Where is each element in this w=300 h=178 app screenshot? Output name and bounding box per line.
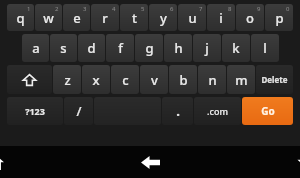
staticText: h bbox=[174, 39, 183, 57]
button[interactable]: x bbox=[82, 65, 110, 94]
button[interactable]: ?123 bbox=[7, 97, 63, 125]
staticText: s bbox=[60, 39, 67, 57]
staticText: 7 bbox=[199, 5, 203, 13]
staticText: 9 bbox=[257, 5, 261, 13]
staticText: q bbox=[16, 9, 25, 27]
staticText: w bbox=[43, 9, 54, 27]
button[interactable]: p bbox=[265, 4, 293, 31]
staticText: i bbox=[219, 9, 223, 27]
button[interactable]: z bbox=[53, 65, 81, 94]
staticText: v bbox=[151, 71, 158, 89]
staticText: g bbox=[145, 39, 154, 57]
button[interactable]: .com bbox=[194, 97, 241, 125]
staticText: c bbox=[122, 71, 129, 89]
button[interactable]: f bbox=[106, 34, 134, 62]
staticText: f bbox=[118, 39, 123, 57]
staticText: Go bbox=[261, 104, 275, 118]
button[interactable]: n bbox=[198, 65, 226, 94]
button[interactable]: Shift bbox=[7, 65, 52, 94]
staticText: u bbox=[188, 9, 197, 27]
staticText: 6 bbox=[170, 5, 174, 13]
button[interactable]: m bbox=[227, 65, 255, 94]
button[interactable]: i bbox=[207, 4, 235, 31]
button[interactable]: r bbox=[91, 4, 119, 31]
staticText: 0 bbox=[286, 5, 290, 13]
button[interactable]: h bbox=[164, 34, 192, 62]
button[interactable]: / bbox=[64, 97, 93, 125]
staticText: 4 bbox=[112, 5, 116, 13]
staticText: r bbox=[102, 9, 108, 27]
button[interactable]: w bbox=[35, 4, 62, 31]
staticText: b bbox=[179, 71, 188, 89]
button[interactable]: t bbox=[120, 4, 148, 31]
button[interactable]: g bbox=[135, 34, 163, 62]
button[interactable]: j bbox=[193, 34, 221, 62]
button[interactable]: Favorites bbox=[200, 146, 300, 178]
staticText: / bbox=[76, 102, 82, 120]
button[interactable]: d bbox=[78, 34, 105, 62]
staticText: y bbox=[160, 9, 167, 27]
staticText: k bbox=[232, 39, 240, 57]
button[interactable]: Back bbox=[100, 146, 200, 178]
button[interactable]: y bbox=[149, 4, 177, 31]
button[interactable]: o bbox=[236, 4, 264, 31]
staticText: n bbox=[208, 71, 217, 89]
staticText: d bbox=[87, 39, 96, 57]
button[interactable]: b bbox=[169, 65, 197, 94]
button[interactable]: s bbox=[50, 34, 77, 62]
staticText: t bbox=[132, 9, 137, 27]
button[interactable]: l bbox=[251, 34, 279, 62]
button[interactable]: Go bbox=[242, 97, 293, 125]
button[interactable]: e bbox=[63, 4, 90, 31]
button[interactable]: q bbox=[7, 4, 34, 31]
staticText: .com bbox=[207, 105, 228, 117]
staticText: ?123 bbox=[25, 105, 45, 117]
staticText: 1 bbox=[27, 5, 31, 13]
staticText: a bbox=[32, 39, 40, 57]
staticText: e bbox=[73, 9, 81, 27]
button[interactable]: Home bbox=[0, 146, 100, 178]
button[interactable]: k bbox=[222, 34, 250, 62]
button[interactable]: a bbox=[22, 34, 49, 62]
staticText: . bbox=[176, 102, 180, 120]
staticText: 8 bbox=[228, 5, 232, 13]
staticText: 2 bbox=[55, 5, 59, 13]
staticText: j bbox=[205, 39, 209, 57]
staticText: z bbox=[64, 71, 71, 89]
staticText: 3 bbox=[83, 5, 87, 13]
staticText: 5 bbox=[141, 5, 145, 13]
button[interactable]: u bbox=[178, 4, 206, 31]
staticText: p bbox=[275, 9, 284, 27]
button[interactable]: Delete bbox=[256, 65, 293, 94]
staticText: l bbox=[263, 39, 267, 57]
button[interactable]: . bbox=[162, 97, 193, 125]
staticText: o bbox=[246, 9, 254, 27]
staticText: x bbox=[92, 71, 100, 89]
staticText: Delete bbox=[261, 74, 288, 85]
button[interactable]: c bbox=[111, 65, 139, 94]
staticText: m bbox=[235, 71, 248, 89]
button[interactable]: v bbox=[140, 65, 168, 94]
